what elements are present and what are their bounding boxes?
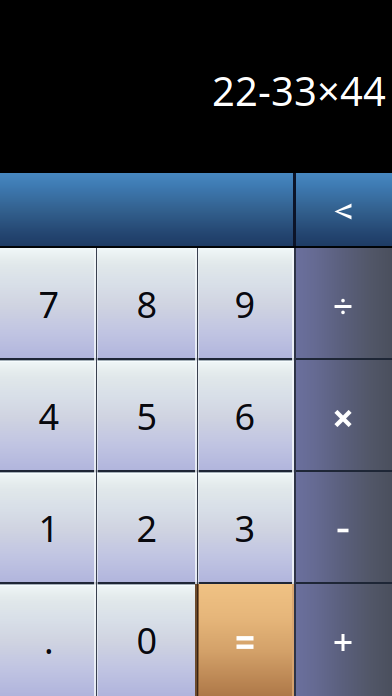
button[interactable]: 1 [0,472,98,584]
button[interactable]: Minus [294,472,392,584]
staticText: . [44,616,54,664]
button[interactable]: Clear [0,173,294,246]
button[interactable]: Divide [294,248,392,360]
button[interactable]: 9 [196,248,294,360]
button[interactable]: 7 [0,248,98,360]
staticText: 7 [38,280,59,328]
button[interactable]: 8 [98,248,196,360]
button[interactable]: Plus [294,584,392,696]
button[interactable]: 3 [196,472,294,584]
staticText: 9 [234,280,255,328]
button[interactable]: . [0,584,98,696]
button[interactable]: 5 [98,360,196,472]
staticText: 6 [234,392,255,440]
staticText: 4 [38,392,59,440]
staticText: 8 [136,280,157,328]
button[interactable]: 2 [98,472,196,584]
button[interactable]: 6 [196,360,294,472]
button[interactable]: 0 [98,584,196,696]
staticText: 5 [136,392,157,440]
staticText: 2 [136,504,157,552]
staticText: 0 [136,616,157,664]
staticText: 1 [38,504,59,552]
button[interactable]: Multiply [294,360,392,472]
button[interactable]: Equals [196,584,294,696]
staticText: 3 [234,504,255,552]
staticText: 22-33×44 [212,64,386,117]
button[interactable]: Backspace [294,173,392,246]
button[interactable]: 4 [0,360,98,472]
